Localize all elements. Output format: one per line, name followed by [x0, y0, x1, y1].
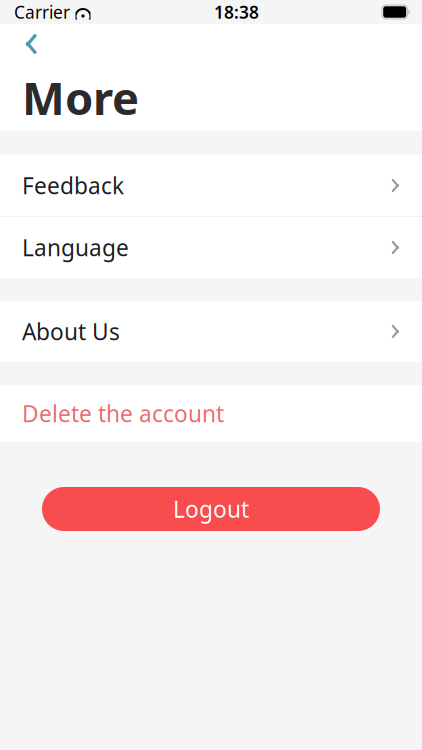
- button[interactable]: Back: [6, 24, 50, 64]
- staticText: More: [22, 67, 139, 128]
- button[interactable]: Delete the account: [0, 385, 422, 442]
- staticText: Carrier: [14, 0, 70, 23]
- staticText: About Us: [22, 316, 120, 346]
- button[interactable]: Logout: [42, 487, 380, 531]
- staticText: Delete the account: [22, 398, 224, 428]
- button[interactable]: Language: [0, 217, 422, 278]
- button[interactable]: Feedback: [0, 155, 422, 216]
- staticText: Feedback: [22, 170, 124, 200]
- staticText: Logout: [173, 494, 249, 524]
- staticText: 18:38: [214, 0, 259, 23]
- button[interactable]: About Us: [0, 301, 422, 362]
- staticText: Language: [22, 232, 129, 262]
